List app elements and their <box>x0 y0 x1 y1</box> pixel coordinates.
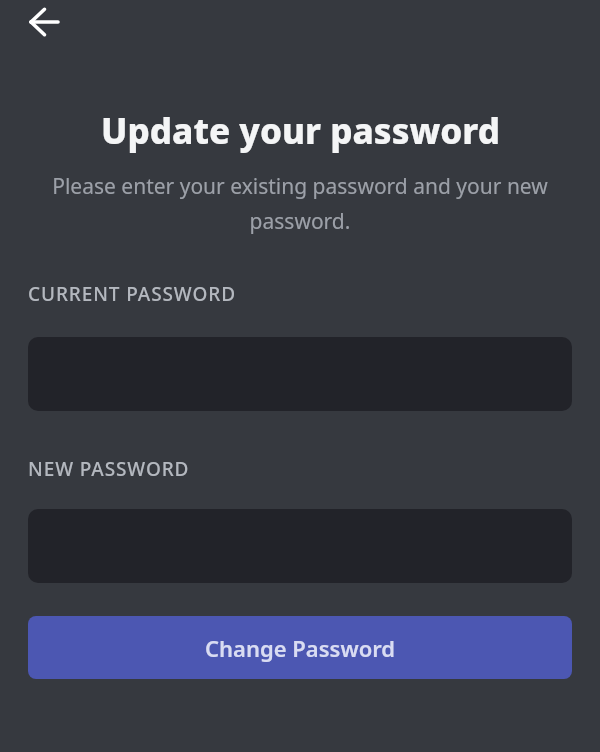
staticText: Update your password <box>101 107 500 155</box>
button[interactable]: Change Password <box>28 616 572 679</box>
staticText: CURRENT PASSWORD <box>28 281 236 307</box>
staticText: Please enter your existing password and … <box>52 172 548 235</box>
staticText: NEW PASSWORD <box>28 456 190 482</box>
button[interactable] <box>19 0 67 48</box>
staticText: Change Password <box>205 633 396 663</box>
